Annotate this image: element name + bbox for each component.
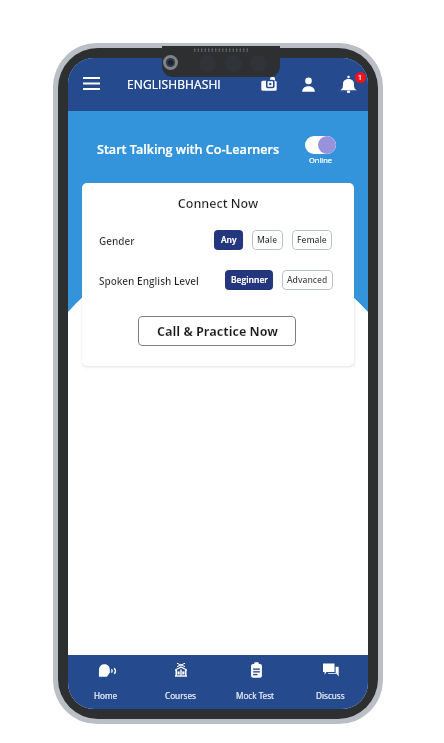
staticText: Beginner — [231, 274, 268, 286]
button[interactable]: Mock Test — [218, 655, 293, 709]
staticText: Discuss — [316, 690, 345, 701]
button[interactable]: Beginner — [225, 270, 273, 290]
button[interactable]: Wallet — [257, 72, 281, 96]
staticText: Advanced — [287, 274, 328, 286]
staticText: Start Talking with Co-Learners — [97, 141, 280, 158]
staticText: Male — [257, 234, 278, 246]
button[interactable]: Any — [214, 230, 243, 250]
button[interactable]: Female — [292, 230, 332, 250]
staticText: Mock Test — [236, 690, 275, 701]
staticText: Gender — [99, 234, 135, 248]
button[interactable]: Profile — [296, 72, 320, 96]
staticText: Spoken English Level — [99, 274, 199, 288]
staticText: Online — [309, 155, 333, 165]
staticText: ENGLISHBHASHI — [127, 76, 221, 92]
button[interactable]: Advanced — [282, 270, 333, 290]
button[interactable]: Menu — [79, 71, 103, 95]
button[interactable]: Male — [252, 230, 283, 250]
button[interactable]: Discuss — [293, 655, 368, 709]
button[interactable]: Online toggle — [305, 136, 336, 165]
staticText: Call & Practice Now — [157, 323, 278, 340]
staticText: Connect Now — [82, 195, 354, 212]
staticText: Female — [297, 234, 327, 246]
button[interactable]: Notifications — [336, 72, 360, 96]
staticText: Courses — [165, 690, 196, 701]
staticText: Home — [94, 690, 118, 701]
button[interactable]: Home — [68, 655, 143, 709]
button[interactable]: Call & Practice Now — [138, 316, 296, 346]
staticText: 1 — [358, 73, 363, 83]
staticText: Any — [221, 234, 237, 246]
button[interactable]: Courses — [143, 655, 218, 709]
